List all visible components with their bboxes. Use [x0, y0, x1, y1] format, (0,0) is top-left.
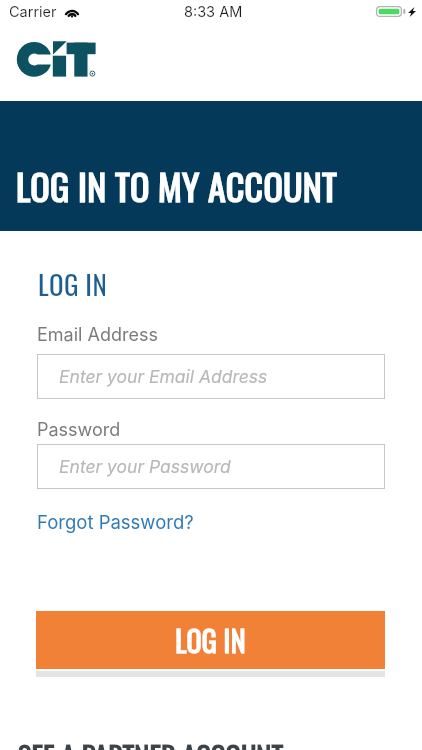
staticText: Password: [37, 419, 121, 441]
staticText: LOG IN TO MY ACCOUNT: [16, 159, 338, 212]
staticText: Carrier: [9, 3, 57, 21]
staticText: Forgot Password?: [37, 511, 194, 533]
staticText: LOG IN: [175, 620, 246, 661]
other: CIT home: [17, 41, 97, 77]
button[interactable]: LOG IN: [36, 611, 385, 669]
staticText: SEE A PARTNER ACCOUNT: [18, 735, 284, 750]
staticText: LOG IN: [38, 264, 108, 304]
staticText: Enter your Password: [59, 456, 231, 477]
button[interactable]: Enter your Email Address: [37, 354, 385, 399]
staticText: 8:33 AM: [184, 3, 243, 21]
staticText: Email Address: [37, 324, 158, 346]
button[interactable]: Forgot Password?: [37, 511, 194, 533]
button[interactable]: Enter your Password: [37, 444, 385, 489]
staticText: Enter your Email Address: [59, 366, 268, 387]
